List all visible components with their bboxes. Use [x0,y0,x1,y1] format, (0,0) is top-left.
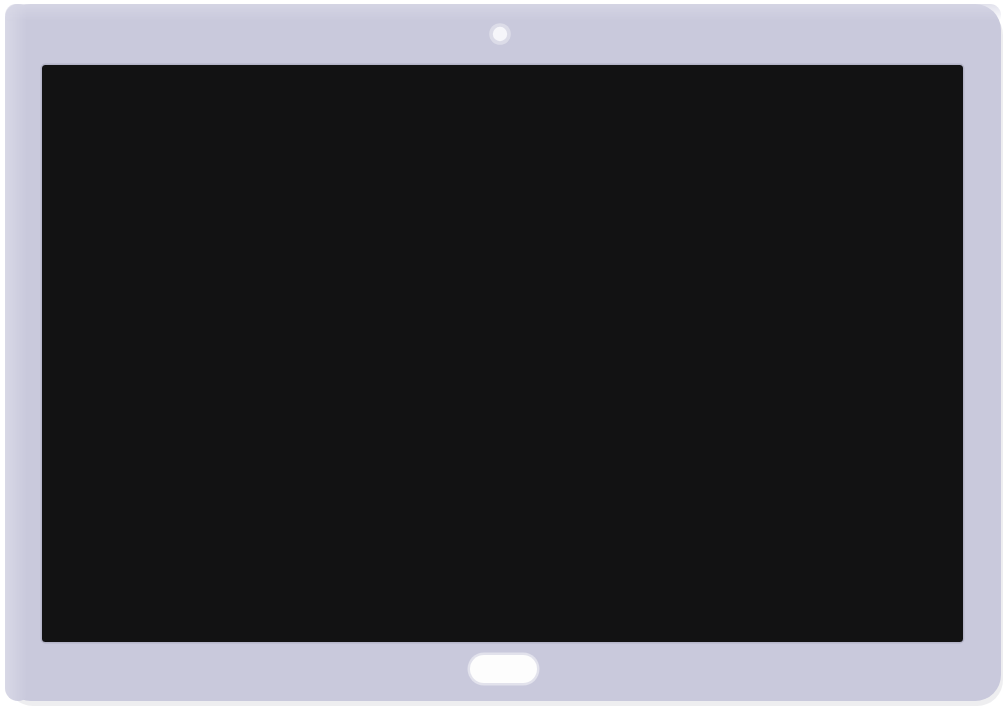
button[interactable]: Tablet device [0,0,1006,706]
